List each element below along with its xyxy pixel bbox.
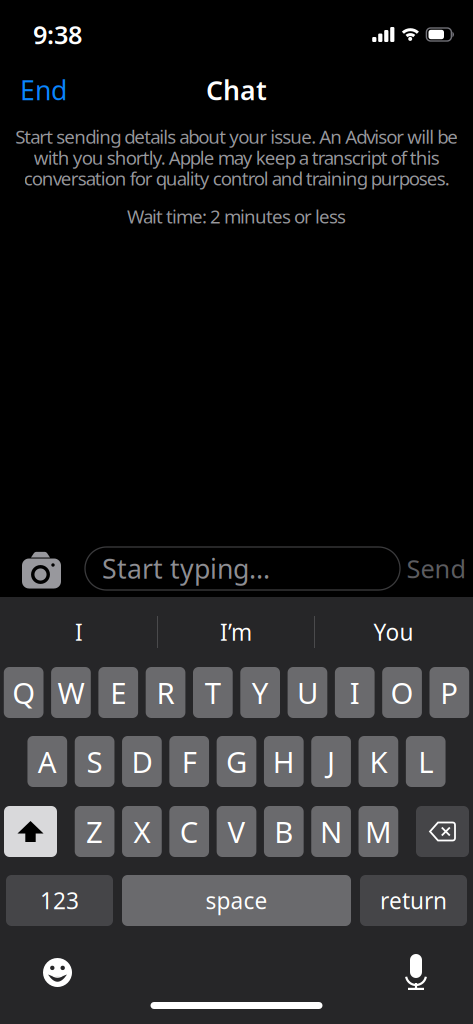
button[interactable]: Dictation	[404, 955, 473, 990]
staticText: 9:38	[33, 18, 82, 51]
button[interactable]: X	[122, 806, 162, 857]
staticText: N	[320, 812, 342, 851]
button[interactable]: M	[359, 806, 398, 857]
button[interactable]: R	[146, 667, 185, 718]
staticText: M	[365, 812, 392, 851]
button[interactable]: You	[315, 617, 472, 647]
staticText: I	[75, 617, 83, 647]
button[interactable]: space	[122, 875, 351, 926]
staticText: C	[180, 812, 199, 851]
button[interactable]: C	[169, 806, 209, 857]
button[interactable]: I	[335, 667, 375, 718]
staticText: T	[205, 673, 221, 712]
staticText: B	[274, 812, 293, 851]
staticText: A	[38, 742, 57, 781]
staticText: space	[205, 885, 267, 915]
button[interactable]: L	[406, 736, 446, 787]
button[interactable]: K	[359, 736, 398, 787]
button[interactable]: Shift	[4, 806, 57, 857]
staticText: J	[327, 742, 335, 781]
staticText: I’m	[220, 617, 252, 647]
staticText: Chat	[206, 72, 267, 108]
staticText: P	[440, 673, 458, 712]
staticText: V	[227, 812, 245, 851]
button[interactable]: P	[429, 667, 469, 718]
button[interactable]: return	[360, 875, 467, 926]
staticText: E	[110, 673, 126, 712]
button[interactable]: J	[311, 736, 351, 787]
button[interactable]: 123	[6, 875, 113, 926]
button[interactable]: Emoji	[0, 958, 72, 987]
staticText: Z	[86, 812, 103, 851]
button[interactable]: H	[264, 736, 304, 787]
staticText: G	[226, 742, 247, 781]
button[interactable]: E	[98, 667, 138, 718]
button[interactable]: A	[27, 736, 67, 787]
button[interactable]: Q	[4, 667, 43, 718]
staticText: R	[157, 673, 175, 712]
staticText: F	[182, 742, 197, 781]
staticText: 123	[40, 885, 79, 915]
staticText: O	[391, 673, 414, 712]
staticText: K	[369, 742, 387, 781]
button[interactable]: I’m	[158, 617, 314, 647]
button[interactable]: V	[217, 806, 256, 857]
button[interactable]: End	[20, 72, 67, 108]
staticText: Start typing...	[102, 551, 270, 586]
button[interactable]: Z	[75, 806, 114, 857]
staticText: Y	[252, 673, 269, 712]
staticText: W	[57, 673, 84, 712]
staticText: End	[20, 72, 67, 108]
button[interactable]: O	[382, 667, 422, 718]
button[interactable]: T	[193, 667, 233, 718]
staticText: H	[273, 742, 295, 781]
button[interactable]: Send	[406, 552, 466, 585]
button[interactable]: I	[1, 617, 157, 647]
button[interactable]: G	[217, 736, 256, 787]
staticText: Wait time: 2 minutes or less	[127, 204, 346, 229]
staticText: Q	[12, 673, 35, 712]
staticText: D	[131, 742, 152, 781]
staticText: U	[297, 673, 318, 712]
button[interactable]: Delete	[416, 806, 469, 857]
button[interactable]: D	[122, 736, 162, 787]
staticText: X	[133, 812, 150, 851]
button[interactable]: Y	[240, 667, 280, 718]
staticText: return	[380, 885, 447, 915]
button[interactable]: U	[288, 667, 327, 718]
staticText: L	[418, 742, 433, 781]
staticText: Start sending details about your issue. …	[15, 124, 458, 191]
staticText: Send	[406, 552, 466, 585]
button[interactable]: B	[264, 806, 304, 857]
button[interactable]: F	[169, 736, 209, 787]
button[interactable]: N	[311, 806, 351, 857]
button[interactable]: S	[75, 736, 114, 787]
staticText: I	[350, 673, 360, 712]
button[interactable]: Camera	[0, 550, 61, 587]
staticText: S	[87, 742, 103, 781]
button[interactable]: Start typing...	[61, 547, 400, 590]
staticText: You	[373, 617, 413, 647]
button[interactable]: W	[51, 667, 91, 718]
